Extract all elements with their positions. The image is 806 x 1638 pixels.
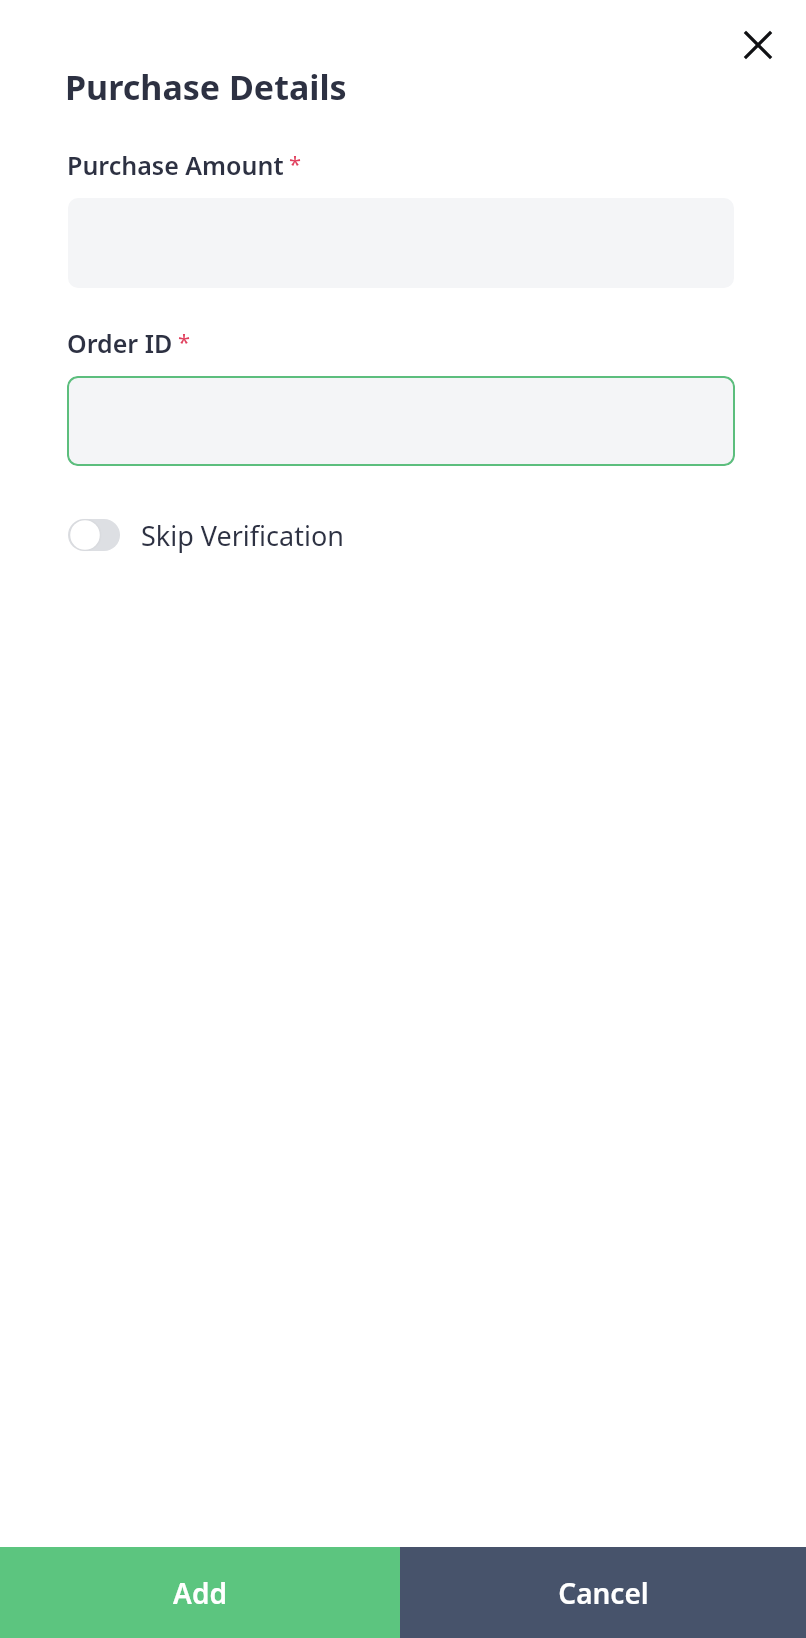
staticText: Add [173,1574,227,1612]
staticText: Purchase Amount [67,148,284,182]
staticText: Order ID [67,326,173,360]
button[interactable]: Skip Verification [60,505,344,565]
staticText: Purchase Details [65,64,347,110]
staticText: Cancel [558,1574,649,1612]
staticText: * [289,148,302,178]
button[interactable]: Close [726,13,790,77]
button[interactable]: Cancel [400,1547,806,1638]
staticText: Skip Verification [141,517,344,554]
button[interactable] [67,376,735,466]
button[interactable]: Add [0,1547,400,1638]
staticText: * [178,326,191,356]
